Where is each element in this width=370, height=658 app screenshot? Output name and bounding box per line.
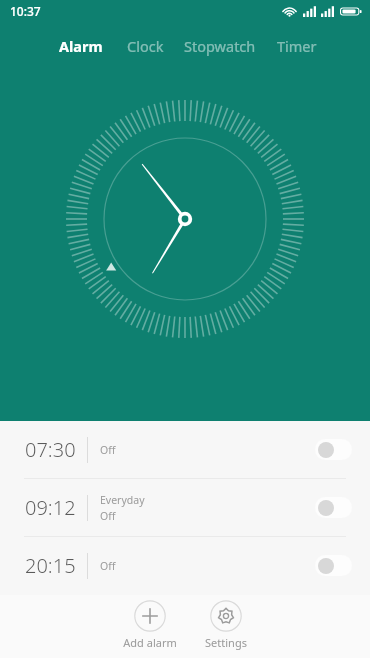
button[interactable]: Toggle alarm: [315, 555, 352, 576]
button[interactable]: Stopwatch: [183, 32, 257, 60]
staticText: 20:15: [25, 552, 76, 579]
staticText: Clock: [127, 36, 164, 56]
button[interactable]: Settings: [199, 595, 253, 655]
button[interactable]: Toggle alarm: [315, 439, 352, 460]
button[interactable]: Add alarm: [117, 595, 183, 655]
staticText: 09:12: [25, 494, 76, 521]
staticText: Stopwatch: [184, 36, 256, 56]
staticText: Add alarm: [123, 635, 177, 650]
staticText: Off: [100, 443, 116, 457]
staticText: 07:30: [25, 436, 76, 463]
button[interactable]: Clock: [126, 32, 165, 60]
staticText: Timer: [277, 36, 317, 56]
button[interactable]: Timer: [276, 32, 318, 60]
staticText: Off: [100, 559, 116, 573]
button[interactable]: 20:15: [0, 537, 370, 594]
staticText: Everyday: [100, 493, 145, 507]
staticText: Off: [100, 509, 116, 523]
staticText: Settings: [205, 635, 247, 650]
button[interactable]: Alarm: [58, 32, 104, 60]
button[interactable]: 07:30: [0, 421, 370, 478]
staticText: Alarm: [59, 36, 103, 56]
button[interactable]: 09:12: [0, 479, 370, 536]
staticText: 10:37: [10, 3, 41, 19]
button[interactable]: Toggle alarm: [315, 497, 352, 518]
